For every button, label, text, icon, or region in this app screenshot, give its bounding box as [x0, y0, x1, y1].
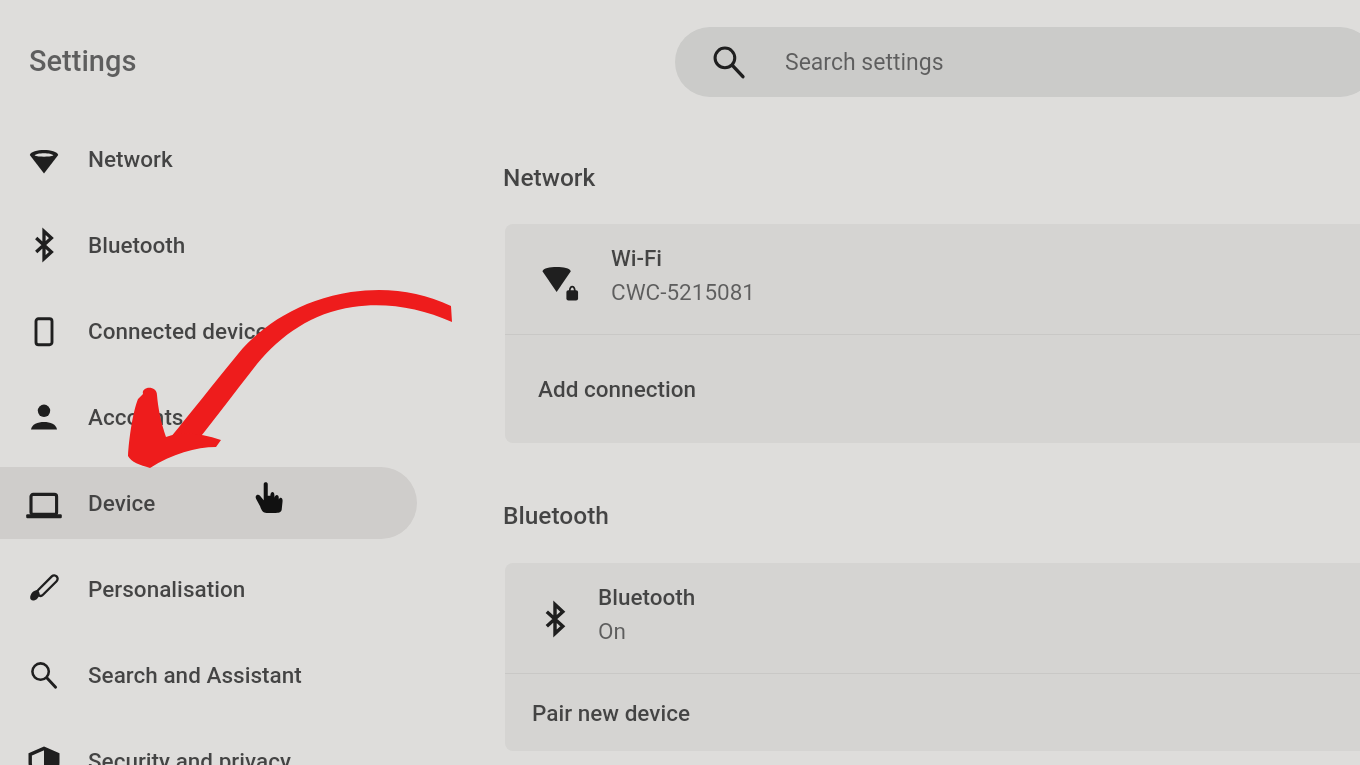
staticText: Accounts	[88, 404, 184, 430]
staticText: Settings	[29, 44, 137, 78]
staticText: Bluetooth	[598, 584, 696, 610]
button[interactable]: Connected devices	[0, 295, 470, 367]
button[interactable]: Wi-Fi secured	[505, 224, 1360, 334]
staticText: CWC-5215081	[611, 279, 755, 305]
staticText: Search settings	[785, 49, 944, 76]
staticText: Personalisation	[88, 576, 246, 602]
button[interactable]: Network	[0, 123, 470, 195]
button[interactable]: Bluetooth	[505, 563, 1360, 673]
button[interactable]: Search and Assistant	[0, 639, 470, 711]
button[interactable]: Bluetooth	[0, 209, 470, 281]
other: Bluetooth	[534, 598, 576, 640]
button[interactable]: Device	[0, 467, 417, 539]
button[interactable]: Pair new device	[505, 674, 1360, 751]
staticText: Connected devices	[88, 318, 280, 344]
button[interactable]: Add connection	[505, 335, 1360, 443]
staticText: Device	[88, 490, 156, 516]
staticText: Add connection	[538, 376, 697, 402]
staticText: Bluetooth	[88, 232, 186, 258]
staticText: Network	[88, 146, 173, 172]
other: Pointer	[255, 481, 284, 513]
button[interactable]: Security and privacy	[0, 725, 470, 765]
staticText: Search and Assistant	[88, 662, 302, 688]
button[interactable]: Search	[675, 27, 1360, 97]
other: Search	[705, 38, 753, 86]
button[interactable]: Personalisation	[0, 553, 470, 625]
staticText: Network	[503, 163, 596, 192]
staticText: Security and privacy	[88, 748, 291, 765]
staticText: Pair new device	[532, 700, 691, 726]
button[interactable]: Accounts	[0, 381, 470, 453]
other: Wi-Fi secured	[540, 260, 584, 304]
staticText: Wi-Fi	[611, 245, 663, 271]
staticText: On	[598, 618, 626, 644]
staticText: Bluetooth	[503, 501, 609, 530]
